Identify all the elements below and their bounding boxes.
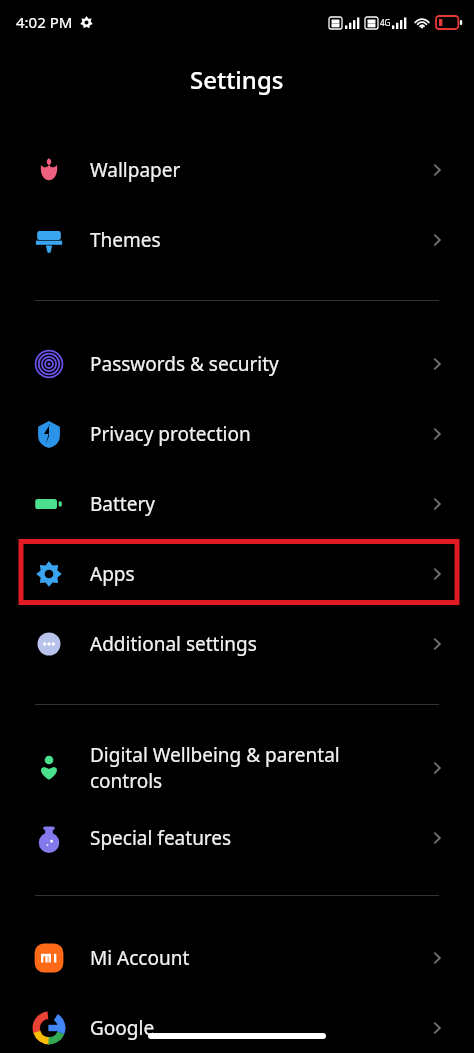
button[interactable]: Digital Wellbeing & parental controls: [0, 733, 474, 803]
staticText: Wallpaper: [90, 157, 426, 183]
button[interactable]: Mi Account: [0, 923, 474, 993]
staticText: Mi Account: [90, 945, 426, 971]
staticText: Battery: [90, 491, 426, 517]
staticText: 4G: [380, 17, 391, 28]
button[interactable]: Privacy protection: [0, 399, 474, 469]
button[interactable]: Special features: [0, 803, 474, 873]
button[interactable]: Google: [0, 993, 474, 1053]
staticText: Themes: [90, 227, 426, 253]
staticText: Additional settings: [90, 631, 426, 657]
button[interactable]: Passwords & security: [0, 329, 474, 399]
button[interactable]: Battery: [0, 469, 474, 539]
staticText: Google: [90, 1015, 426, 1041]
staticText: 4:02 PM: [16, 12, 73, 32]
staticText: Privacy protection: [90, 421, 426, 447]
staticText: Digital Wellbeing & parental controls: [90, 742, 426, 794]
staticText: Special features: [90, 825, 426, 851]
staticText: Apps: [90, 561, 426, 587]
staticText: Settings: [190, 63, 284, 96]
button[interactable]: Themes: [0, 205, 474, 275]
button[interactable]: Wallpaper: [0, 135, 474, 205]
staticText: Passwords & security: [90, 351, 426, 377]
button[interactable]: Apps: [0, 539, 474, 609]
button[interactable]: Additional settings: [0, 609, 474, 679]
